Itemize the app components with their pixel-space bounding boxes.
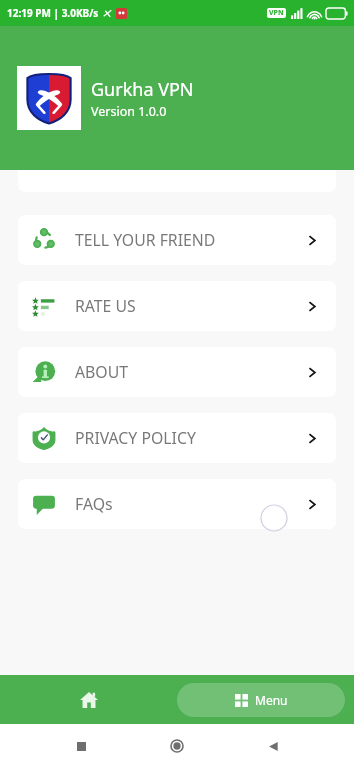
button[interactable]: Home <box>0 675 177 724</box>
staticText: PRIVACY POLICY <box>75 427 196 449</box>
staticText: Menu <box>255 692 288 708</box>
staticText: ABOUT <box>75 361 129 383</box>
button[interactable]: Menu <box>177 683 345 717</box>
staticText: 12:19 PM | 3.0KB/s <box>7 6 99 20</box>
staticText: RATE US <box>75 295 136 317</box>
button[interactable]: TELL YOUR FRIEND <box>18 215 336 265</box>
button[interactable]: FAQs <box>18 479 336 529</box>
button[interactable]: RATE US <box>18 281 336 331</box>
staticText: TELL YOUR FRIEND <box>75 229 216 251</box>
staticText: Gurkha VPN <box>91 77 194 102</box>
button[interactable]: PRIVACY POLICY <box>18 413 336 463</box>
staticText: VPN <box>269 8 284 18</box>
button[interactable]: ABOUT <box>18 347 336 397</box>
staticText: FAQs <box>75 493 113 515</box>
staticText: Version 1.0.0 <box>91 103 167 120</box>
